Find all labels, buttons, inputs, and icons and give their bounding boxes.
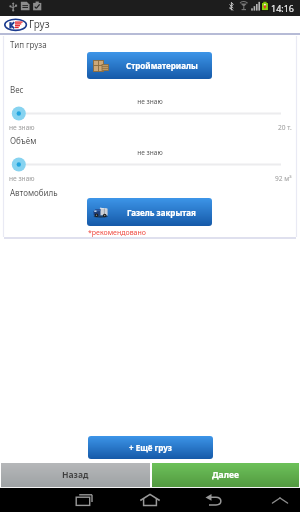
staticText: Газель закрытая [127,207,196,218]
button[interactable]: Газель закрытая [87,198,212,226]
button[interactable]: Далее [152,463,299,487]
button[interactable]: Recent apps [72,488,94,512]
staticText: + Ещё груз [129,442,172,453]
staticText: 92 м³ [275,174,292,183]
button[interactable]: Back [203,488,225,512]
staticText: 14:16 [271,2,295,14]
button[interactable]: Hide navigation bar [269,488,291,512]
button[interactable]: Назад [1,463,150,487]
button[interactable]: Home [139,488,161,512]
staticText: Вес [10,84,24,95]
staticText: не знаю [9,123,35,132]
staticText: Тип груза [10,39,47,50]
button[interactable]: Груз [0,16,300,33]
staticText: не знаю [3,97,297,106]
button[interactable]: Стройматериалы [87,52,212,79]
staticText: 20 т. [278,123,292,132]
button[interactable] [3,156,297,173]
staticText: не знаю [3,148,297,157]
staticText: не знаю [9,174,35,183]
staticText: Автомобиль [10,187,58,198]
staticText: Назад [62,469,89,481]
staticText: Стройматериалы [126,60,198,71]
staticText: Далее [212,469,239,481]
button[interactable] [3,105,297,122]
staticText: *рекомендовано [88,228,146,238]
staticText: Груз [29,17,50,31]
staticText: Объём [10,135,37,146]
button[interactable]: + Ещё груз [88,436,213,459]
